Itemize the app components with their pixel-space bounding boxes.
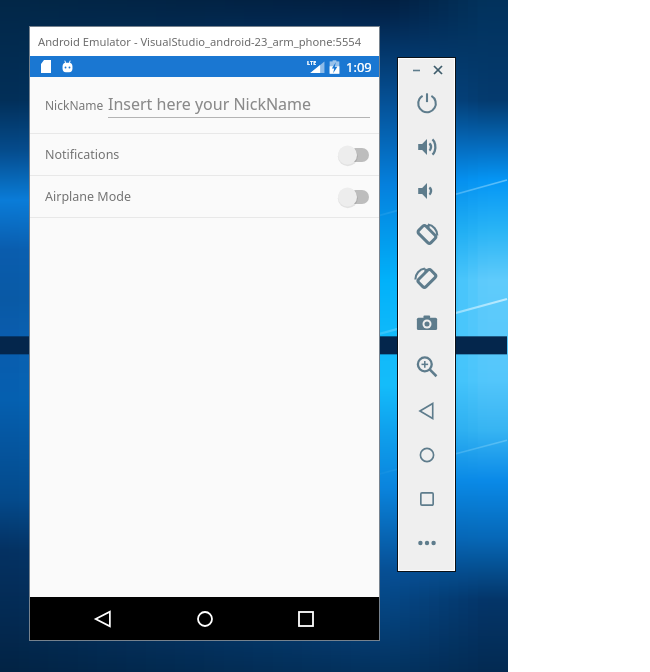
button[interactable]: Screenshot [399,301,454,345]
button[interactable]: NickName [29,77,380,133]
staticText: 1:09 [346,58,372,76]
staticText: Notifications [45,146,120,163]
button[interactable]: Power [399,81,454,125]
button[interactable]: Minimise [406,60,426,80]
button[interactable]: Rotate left [399,213,454,257]
button[interactable]: Recents [282,597,330,641]
staticText: LTE [307,59,317,66]
button[interactable]: Close [428,60,448,80]
button[interactable]: Notifications [29,134,380,175]
staticText: NickName [45,97,104,113]
staticText: Airplane Mode [45,188,131,205]
button[interactable]: Volume up [399,125,454,169]
button[interactable]: Zoom [399,345,454,389]
button[interactable]: Airplane Mode [29,176,380,217]
button[interactable]: More [399,521,454,565]
button[interactable]: Back [79,597,127,641]
button[interactable]: Rotate right [399,257,454,301]
button[interactable]: Overview [399,477,454,521]
button[interactable]: Back [399,389,454,433]
staticText: Android Emulator - VisualStudio_android-… [38,34,362,49]
button[interactable]: Home [399,433,454,477]
staticText: Insert here your NickName [108,93,312,115]
button[interactable]: Volume down [399,169,454,213]
button[interactable]: Home [181,597,229,641]
